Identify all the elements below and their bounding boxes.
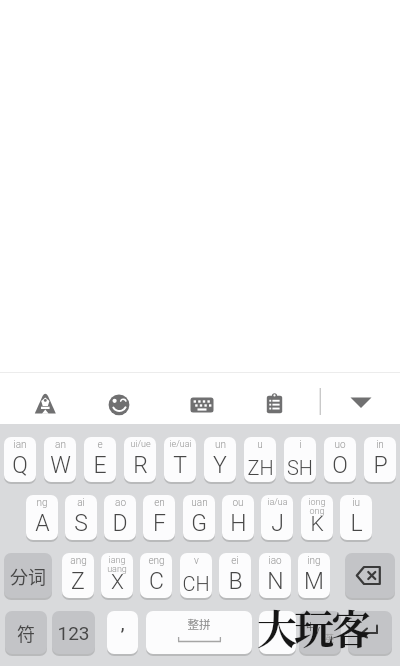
- staticText: 整拼: [146, 616, 252, 632]
- staticText: ng: [36, 497, 48, 509]
- staticText: ao: [115, 497, 126, 509]
- staticText: E: [93, 452, 107, 479]
- staticText: W: [50, 452, 71, 479]
- staticText: e: [97, 439, 103, 451]
- staticText: uan: [191, 497, 208, 509]
- staticText: T: [173, 452, 187, 479]
- staticText: 分词: [10, 563, 46, 589]
- staticText: J: [271, 510, 284, 537]
- staticText: ZH: [247, 456, 274, 479]
- staticText: ian: [13, 439, 27, 451]
- staticText: O: [332, 452, 348, 479]
- staticText: Q: [12, 452, 28, 479]
- staticText: 中: [306, 620, 316, 633]
- staticText: Y: [213, 452, 227, 479]
- staticText: R: [133, 452, 148, 479]
- staticText: L: [350, 510, 363, 537]
- staticText: 大玩客: [257, 598, 368, 655]
- staticText: iang uang: [107, 555, 127, 574]
- staticText: P: [373, 452, 388, 479]
- staticText: iao: [268, 555, 282, 567]
- staticText: i: [299, 439, 302, 451]
- staticText: ing: [307, 555, 321, 567]
- staticText: 符: [17, 620, 35, 646]
- staticText: in: [376, 439, 384, 451]
- staticText: eng: [148, 555, 165, 567]
- staticText: ei: [231, 555, 239, 567]
- staticText: iong ong: [308, 497, 326, 516]
- staticText: un: [215, 439, 226, 451]
- staticText: K: [310, 512, 324, 537]
- staticText: ia/ua: [267, 497, 288, 508]
- staticText: iu: [352, 497, 360, 509]
- staticText: en: [154, 497, 165, 509]
- staticText: CH: [182, 572, 210, 595]
- staticText: F: [153, 510, 166, 537]
- staticText: M: [304, 568, 324, 595]
- staticText: 英: [325, 632, 335, 645]
- staticText: v: [194, 555, 199, 567]
- staticText: N: [267, 568, 284, 595]
- staticText: X: [111, 570, 124, 595]
- staticText: SH: [287, 456, 313, 479]
- staticText: H: [230, 510, 247, 537]
- staticText: ai: [77, 497, 85, 509]
- staticText: uo: [334, 439, 346, 451]
- staticText: A: [35, 510, 50, 537]
- staticText: ’: [120, 624, 125, 647]
- staticText: u: [257, 439, 263, 451]
- staticText: D: [112, 510, 128, 537]
- staticText: /: [316, 626, 321, 638]
- staticText: ou: [232, 497, 244, 509]
- staticText: 123: [57, 622, 90, 644]
- staticText: an: [55, 439, 66, 451]
- staticText: ie/uai: [169, 439, 192, 450]
- staticText: B: [228, 568, 243, 595]
- staticText: C: [149, 568, 164, 595]
- staticText: ui/ue: [130, 439, 151, 450]
- staticText: Z: [71, 568, 85, 595]
- staticText: G: [191, 510, 207, 537]
- staticText: ang: [70, 555, 87, 567]
- staticText: S: [74, 510, 88, 537]
